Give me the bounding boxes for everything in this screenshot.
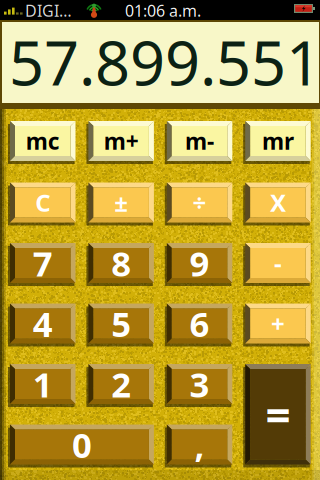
button[interactable]: 6 [167,303,232,343]
staticText: ÷ [193,187,207,218]
staticText: + [271,308,285,339]
button[interactable]: mc [10,121,75,161]
staticText: 2 [111,361,131,407]
staticText: 3 [190,361,210,407]
button[interactable]: mr [245,121,311,161]
staticText: 9 [190,240,210,286]
staticText: m- [185,126,214,156]
staticText: 01:06 a.m. [125,0,201,21]
button[interactable]: = [245,364,311,464]
button[interactable]: 4 [10,303,75,343]
button[interactable]: 2 [88,364,154,404]
button[interactable]: ± [88,182,154,222]
button[interactable]: 7 [10,243,75,283]
staticText: 0 [72,421,92,467]
button[interactable]: 1 [10,364,75,404]
button[interactable]: 5 [88,303,154,343]
button[interactable]: , [167,424,232,464]
button[interactable]: - [245,243,311,283]
staticText: mr [262,126,294,156]
staticText: 6 [190,300,210,346]
staticText: m+ [104,126,139,156]
staticText: 1 [33,361,53,407]
button[interactable]: + [245,303,311,343]
button[interactable]: 9 [167,243,232,283]
staticText: , [195,421,205,467]
button[interactable]: 0 [10,424,154,464]
staticText: X [270,187,286,218]
button[interactable]: C [10,182,75,222]
staticText: ± [114,187,128,218]
button[interactable]: ÷ [167,182,232,222]
staticText: C [35,187,50,218]
button[interactable]: 3 [167,364,232,404]
staticText: mc [26,126,60,156]
staticText: 4 [33,300,53,346]
staticText: 5 [111,300,131,346]
button[interactable]: m+ [88,121,154,161]
staticText: = [265,385,290,443]
button[interactable]: m- [167,121,232,161]
button[interactable]: 8 [88,243,154,283]
staticText: - [274,247,282,279]
button[interactable]: X [245,182,311,222]
staticText: DIGI… [25,0,72,21]
staticText: 8 [111,240,131,286]
staticText: 57.899.551 [9,21,320,102]
staticText: 7 [33,240,53,286]
